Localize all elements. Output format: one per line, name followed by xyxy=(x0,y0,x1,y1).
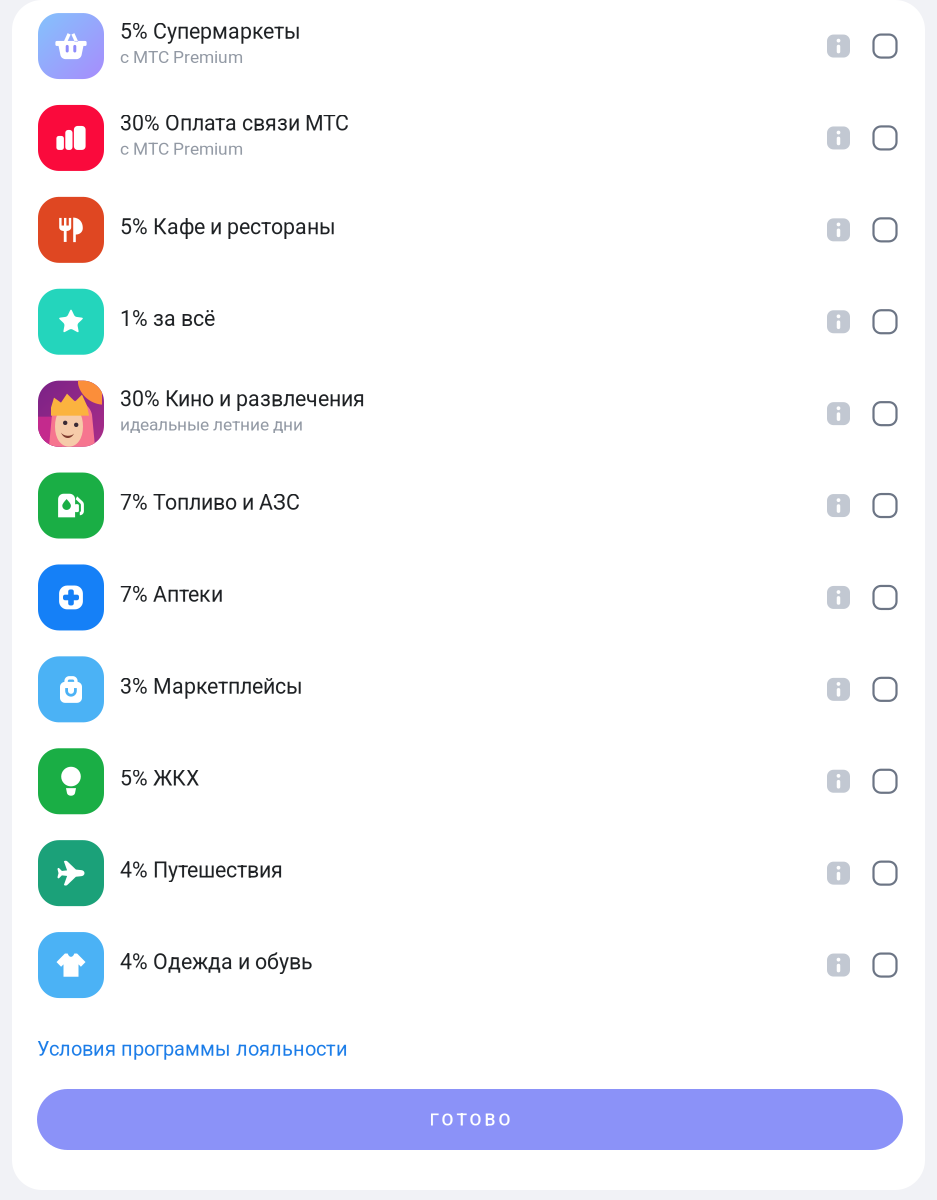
staticText: 30% Кино и развлечения xyxy=(120,386,365,411)
staticText: 1% за всё xyxy=(120,306,215,331)
button[interactable]: Выбрать категорию xyxy=(861,108,909,168)
staticText: 3% Маркетплейсы xyxy=(120,674,303,699)
staticText: 7% Аптеки xyxy=(120,582,223,607)
button[interactable]: Выбрать категорию xyxy=(861,659,909,719)
button[interactable]: Подробнее о категории xyxy=(816,200,861,260)
staticText: 5% Кафе и рестораны xyxy=(120,214,336,239)
button[interactable]: Подробнее о категории xyxy=(816,384,861,444)
button[interactable]: 5% Супермаркеты xyxy=(12,0,925,92)
button[interactable]: Выбрать категорию xyxy=(861,16,909,76)
staticText: Условия программы лояльности xyxy=(37,1037,348,1061)
staticText: с МТС Premium xyxy=(120,139,243,159)
staticText: 4% Путешествия xyxy=(120,858,283,883)
button[interactable]: 3% Маркетплейсы xyxy=(12,643,925,735)
button[interactable]: Выбрать категорию xyxy=(861,567,909,627)
button[interactable]: Подробнее о категории xyxy=(816,567,861,627)
button[interactable]: Подробнее о категории xyxy=(816,843,861,903)
staticText: ГОТОВО xyxy=(429,1109,510,1130)
button[interactable]: 5% Кафе и рестораны xyxy=(12,184,925,276)
button[interactable]: ГОТОВО xyxy=(37,1089,903,1150)
button[interactable]: 4% Путешествия xyxy=(12,827,925,919)
button[interactable]: Выбрать категорию xyxy=(861,843,909,903)
button[interactable]: 7% Аптеки xyxy=(12,551,925,643)
button[interactable]: Выбрать категорию xyxy=(861,200,909,260)
staticText: 5% ЖКХ xyxy=(120,766,199,791)
button[interactable]: 4% Одежда и обувь xyxy=(12,919,925,1011)
staticText: 7% Топливо и АЗС xyxy=(120,490,300,515)
staticText: идеальные летние дни xyxy=(120,414,303,435)
button[interactable]: Подробнее о категории xyxy=(816,935,861,995)
staticText: 4% Одежда и обувь xyxy=(120,950,313,975)
staticText: с МТС Premium xyxy=(120,47,243,67)
button[interactable]: Выбрать категорию xyxy=(861,292,909,352)
button[interactable]: Подробнее о категории xyxy=(816,292,861,352)
button[interactable]: Выбрать категорию xyxy=(861,751,909,811)
button[interactable]: 30% Оплата связи МТС xyxy=(12,92,925,184)
button[interactable]: Подробнее о категории xyxy=(816,16,861,76)
button[interactable]: 1% за всё xyxy=(12,276,925,368)
staticText: 30% Оплата связи МТС xyxy=(120,111,349,136)
button[interactable]: Подробнее о категории xyxy=(816,108,861,168)
button[interactable]: 30% Кино и развлечения xyxy=(12,368,925,460)
button[interactable]: Выбрать категорию xyxy=(861,384,909,444)
staticText: 5% Супермаркеты xyxy=(120,19,301,44)
button[interactable]: Выбрать категорию xyxy=(861,476,909,536)
button[interactable]: Подробнее о категории xyxy=(816,476,861,536)
button[interactable]: Условия программы лояльности xyxy=(12,1034,360,1064)
button[interactable]: Подробнее о категории xyxy=(816,751,861,811)
button[interactable]: Подробнее о категории xyxy=(816,659,861,719)
button[interactable]: 5% ЖКХ xyxy=(12,735,925,827)
button[interactable]: 7% Топливо и АЗС xyxy=(12,460,925,551)
button[interactable]: Выбрать категорию xyxy=(861,935,909,995)
